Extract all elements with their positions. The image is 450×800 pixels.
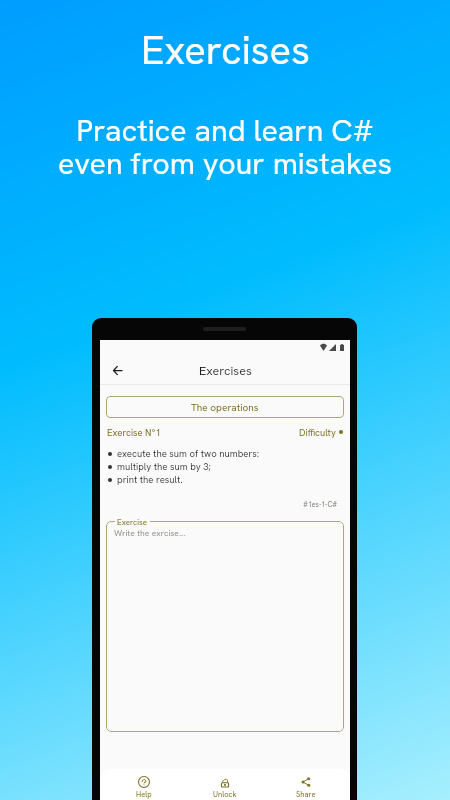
staticText: Difficulty bbox=[299, 426, 336, 438]
button[interactable]: The operations bbox=[106, 396, 344, 418]
staticText: Practice and learn C# even from your mis… bbox=[58, 111, 392, 183]
button[interactable]: Back bbox=[107, 360, 127, 380]
staticText: print the result. bbox=[117, 473, 183, 486]
button[interactable]: Unlock bbox=[199, 776, 251, 799]
button[interactable]: Help bbox=[118, 776, 170, 799]
staticText: Exercises bbox=[199, 362, 252, 378]
button[interactable] bbox=[106, 521, 344, 732]
staticText: The operations bbox=[191, 401, 259, 414]
staticText: execute the sum of two numbers: bbox=[117, 447, 260, 460]
staticText: multiply the sum by 3; bbox=[117, 460, 211, 473]
staticText: Exercises bbox=[141, 24, 310, 76]
staticText: Write the exrcise... bbox=[114, 527, 186, 538]
staticText: Unlock bbox=[213, 789, 237, 799]
staticText: Exercise bbox=[117, 517, 148, 527]
staticText: #1es-1-C# bbox=[303, 500, 338, 509]
staticText: Exercise N°1 bbox=[107, 426, 161, 438]
staticText: Help bbox=[136, 789, 152, 799]
button[interactable]: Share bbox=[280, 776, 332, 799]
staticText: Share bbox=[296, 789, 316, 799]
